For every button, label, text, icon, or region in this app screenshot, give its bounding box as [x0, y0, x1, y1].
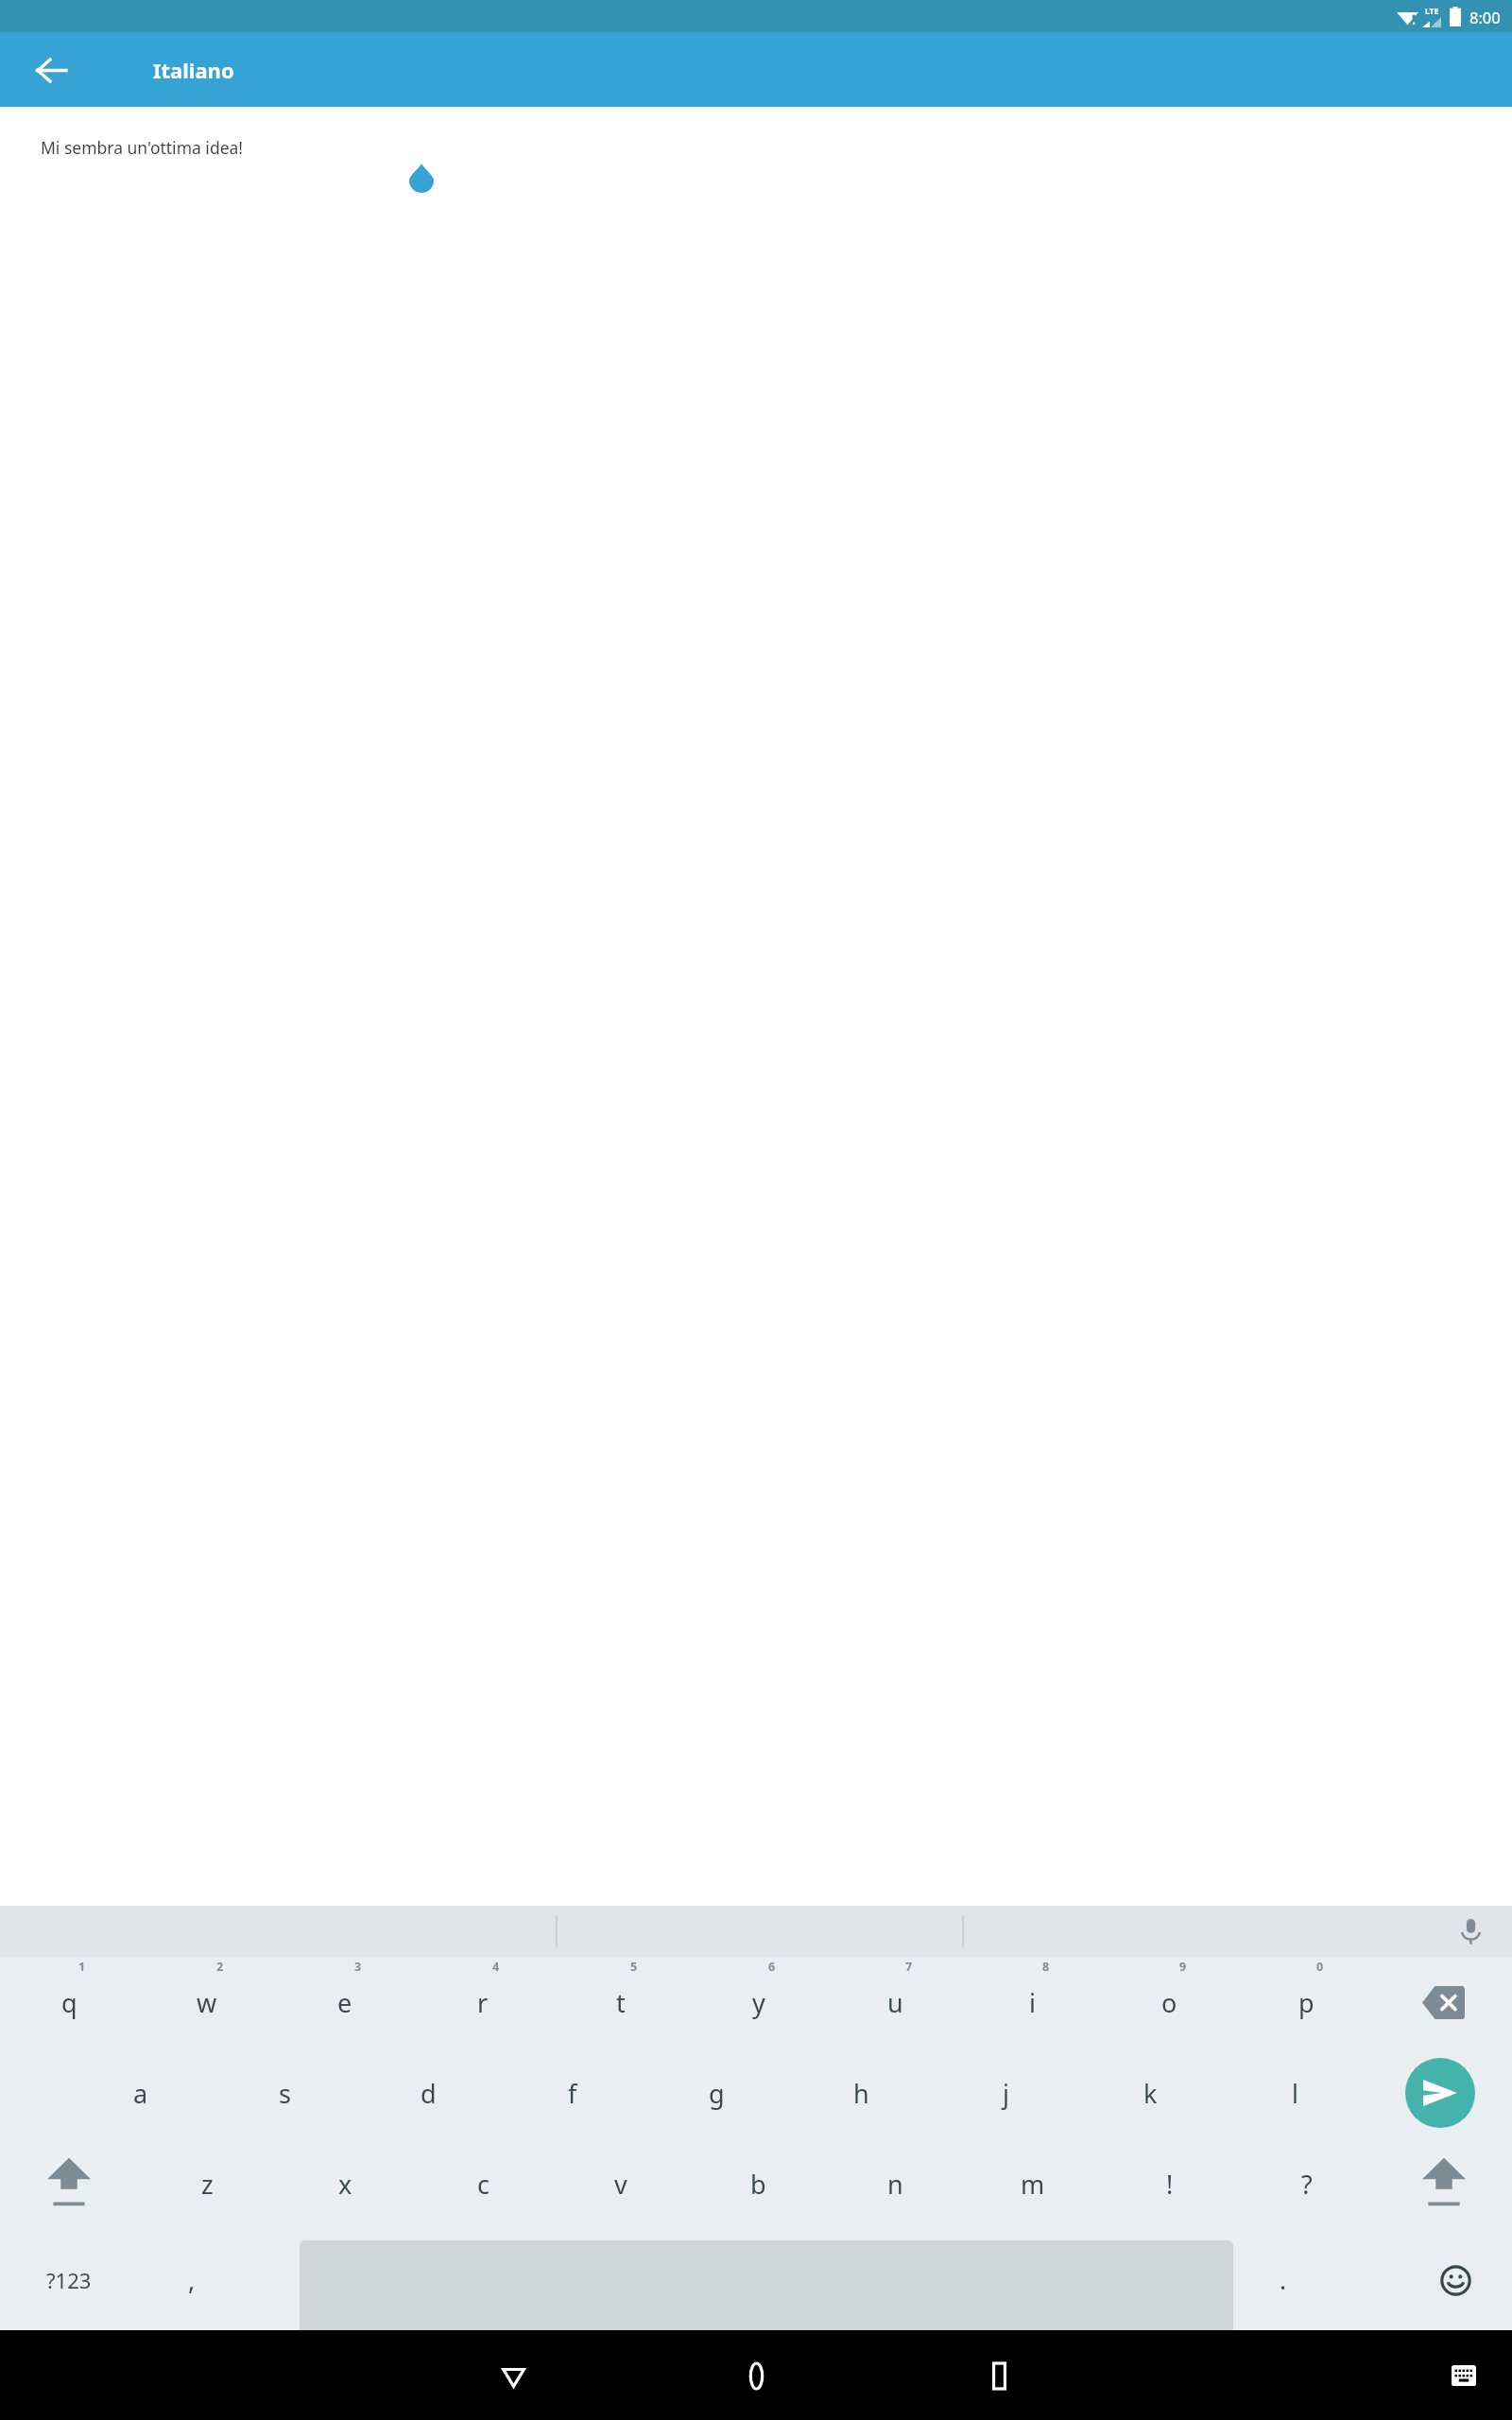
staticText: 5	[630, 1959, 638, 1975]
button[interactable]: u	[827, 1957, 964, 2048]
button[interactable]: !	[1101, 2138, 1238, 2229]
staticText: c	[477, 2167, 490, 2202]
staticText: 8:00	[1469, 7, 1501, 27]
button[interactable]: y	[690, 1957, 827, 2048]
staticText: h	[853, 2076, 869, 2111]
button[interactable]: n	[827, 2138, 964, 2229]
staticText: 8	[1042, 1959, 1050, 1975]
staticText: l	[1292, 2076, 1298, 2111]
button[interactable]: j	[934, 2048, 1078, 2138]
button[interactable]: d	[356, 2048, 500, 2138]
staticText: e	[337, 1985, 352, 2020]
button[interactable]: p	[1238, 1957, 1375, 2048]
button[interactable]: l	[1223, 2048, 1367, 2138]
button[interactable]: a	[69, 2048, 213, 2138]
button[interactable]: .	[1238, 2229, 1328, 2330]
button[interactable]: Shift	[1375, 2138, 1512, 2229]
staticText: p	[1298, 1985, 1314, 2020]
button[interactable]: Emoji	[1425, 2250, 1486, 2310]
staticText: y	[752, 1985, 765, 2020]
button[interactable]: ?123	[0, 2229, 137, 2330]
staticText: 1	[78, 1959, 86, 1975]
staticText: ?	[1301, 2167, 1313, 2202]
button[interactable]: ?	[1238, 2138, 1375, 2229]
staticText: b	[750, 2167, 766, 2202]
staticText: !	[1166, 2167, 1174, 2202]
button[interactable]: o	[1101, 1957, 1238, 2048]
button[interactable]: k	[1078, 2048, 1223, 2138]
button[interactable]: ,	[137, 2229, 246, 2330]
button[interactable]: Recents	[963, 2340, 1035, 2411]
staticText: ?123	[46, 2266, 92, 2294]
staticText: 7	[905, 1959, 913, 1975]
staticText: d	[421, 2076, 437, 2111]
staticText: t	[616, 1985, 626, 2020]
staticText: f	[568, 2076, 577, 2111]
button[interactable]: h	[789, 2048, 934, 2138]
button[interactable]: s	[213, 2048, 356, 2138]
staticText: 4	[492, 1959, 500, 1975]
staticText: 6	[768, 1959, 776, 1975]
staticText: m	[1021, 2167, 1045, 2202]
button[interactable]: z	[138, 2138, 276, 2229]
button[interactable]: w	[138, 1957, 276, 2048]
button[interactable]: Back	[477, 2340, 549, 2411]
button[interactable]: Back	[25, 43, 77, 96]
staticText: .	[1280, 2262, 1287, 2297]
staticText: u	[887, 1985, 903, 2020]
staticText: j	[1003, 2076, 1009, 2111]
staticText: Italiano	[153, 56, 234, 84]
staticText: o	[1161, 1985, 1177, 2020]
staticText: x	[338, 2167, 352, 2202]
button[interactable]: Backspace	[1375, 1957, 1512, 2048]
staticText: v	[614, 2167, 627, 2202]
button[interactable]: b	[690, 2138, 827, 2229]
staticText: w	[197, 1985, 217, 2020]
staticText: n	[887, 2167, 903, 2202]
button[interactable]: Home	[720, 2340, 792, 2411]
staticText: ,	[188, 2262, 196, 2297]
button[interactable]: f	[500, 2048, 644, 2138]
staticText: a	[133, 2076, 148, 2111]
staticText: s	[279, 2076, 291, 2111]
staticText: LTE	[1425, 6, 1439, 17]
button[interactable]: g	[644, 2048, 789, 2138]
button[interactable]: i	[964, 1957, 1101, 2048]
button[interactable]: Send	[1367, 2048, 1512, 2138]
button[interactable]: v	[552, 2138, 690, 2229]
button[interactable]: Space	[300, 2240, 1233, 2342]
button[interactable]: q	[0, 1957, 138, 2048]
button[interactable]: t	[552, 1957, 690, 2048]
staticText: k	[1143, 2076, 1158, 2111]
button[interactable]: r	[414, 1957, 552, 2048]
button[interactable]: m	[964, 2138, 1101, 2229]
button[interactable]: Shift	[0, 2138, 138, 2229]
staticText: z	[201, 2167, 214, 2202]
staticText: Mi sembra un'ottima idea!	[41, 136, 244, 159]
button[interactable]: c	[414, 2138, 552, 2229]
button[interactable]: e	[276, 1957, 414, 2048]
staticText: i	[1029, 1985, 1036, 2020]
staticText: 9	[1179, 1959, 1187, 1975]
button[interactable]: Switch keyboard	[1435, 2346, 1493, 2405]
staticText: 3	[354, 1959, 362, 1975]
button[interactable]: Voice input	[1448, 1909, 1493, 1954]
staticText: r	[477, 1985, 489, 2020]
button[interactable]: x	[276, 2138, 414, 2229]
staticText: 0	[1316, 1959, 1324, 1975]
staticText: 2	[216, 1959, 224, 1975]
staticText: g	[709, 2076, 725, 2111]
staticText: q	[61, 1985, 77, 2020]
